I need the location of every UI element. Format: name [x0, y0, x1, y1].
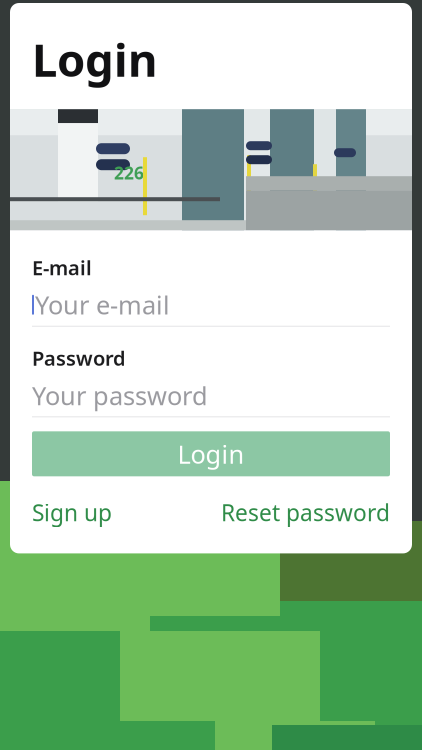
staticText: Sign up [32, 497, 112, 527]
button[interactable]: Reset password [209, 489, 390, 535]
staticText: Login [177, 437, 244, 471]
button[interactable]: Your password [32, 382, 390, 408]
button[interactable]: Your e-mail [32, 292, 390, 318]
staticText: Your e-mail [35, 288, 170, 321]
staticText: 226 [114, 161, 144, 184]
staticText: Password [32, 345, 126, 371]
staticText: E-mail [32, 254, 92, 281]
button[interactable]: Sign up [32, 489, 124, 535]
staticText: Reset password [221, 497, 390, 527]
button[interactable]: Login [32, 431, 390, 476]
staticText: Login [32, 29, 157, 89]
staticText: Your password [32, 378, 208, 412]
